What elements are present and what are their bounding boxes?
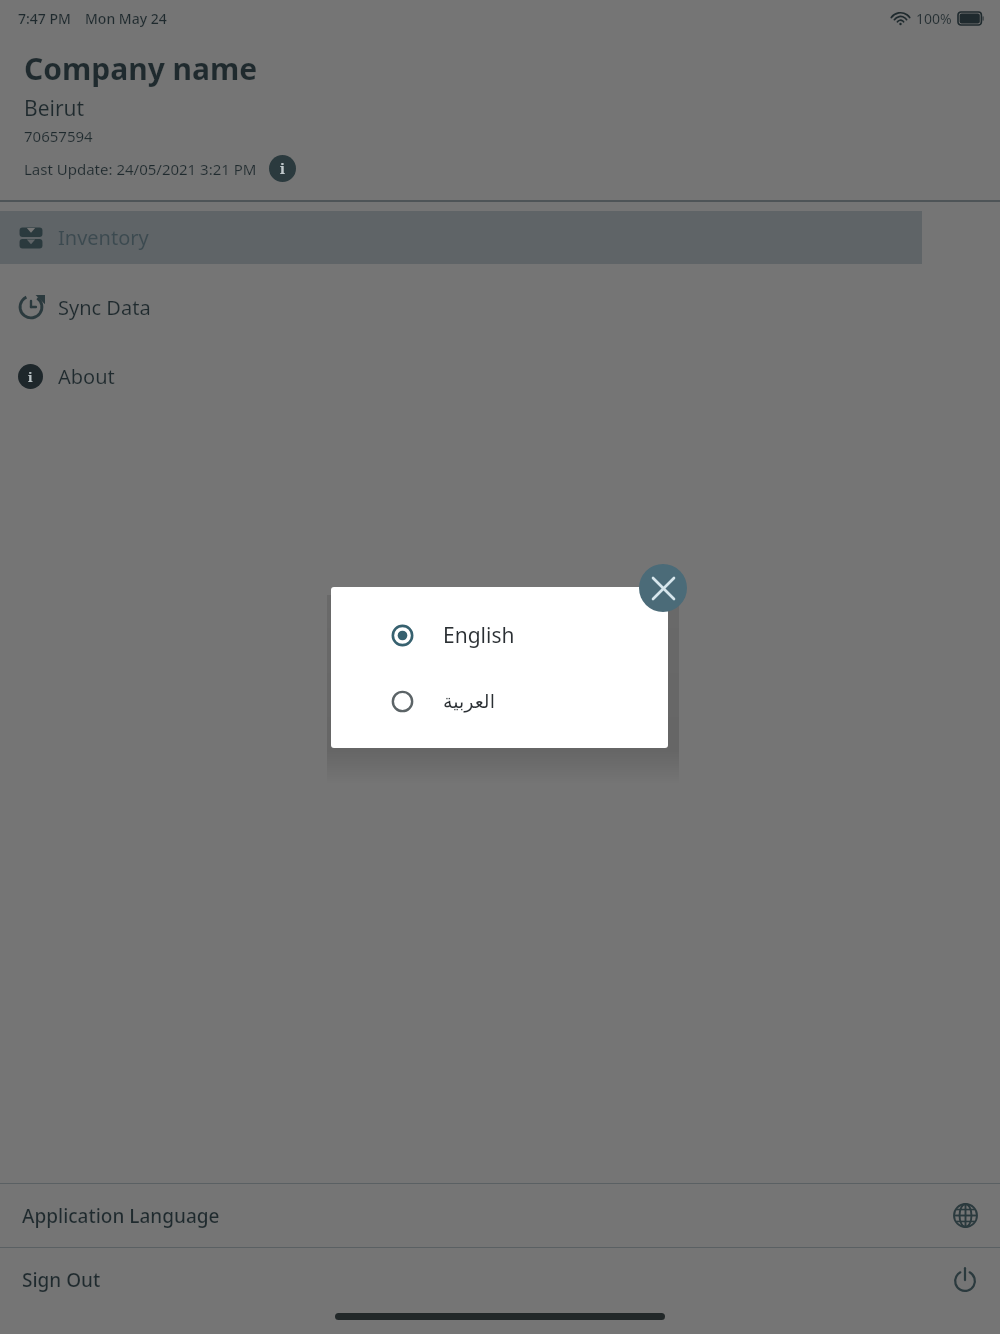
staticText: Application Language [22,1203,220,1229]
button[interactable]: Close [639,564,687,612]
button[interactable]: Information [269,155,296,182]
staticText: Mon May 24 [85,9,167,28]
button[interactable]: العربية [331,676,668,726]
staticText: About [58,363,115,390]
staticText: i [28,368,33,386]
button[interactable]: English [331,610,668,660]
button[interactable]: Application Language [0,1184,1000,1247]
button[interactable]: Sync Data [0,281,1000,333]
button[interactable]: Inventory [0,211,922,264]
button[interactable]: i [0,350,1000,402]
staticText: Beirut [24,94,85,123]
staticText: 70657594 [24,126,93,146]
staticText: Sign Out [22,1267,101,1293]
staticText: 100% [916,9,952,28]
staticText: Company name [24,48,258,89]
button[interactable]: Sign Out [0,1248,1000,1311]
staticText: العربية [443,690,495,712]
staticText: Sync Data [58,294,151,321]
staticText: i [280,159,285,178]
staticText: Last Update: 24/05/2021 3:21 PM [24,159,257,179]
staticText: English [443,621,515,650]
staticText: 7:47 PM [18,9,71,28]
staticText: Inventory [58,224,149,251]
